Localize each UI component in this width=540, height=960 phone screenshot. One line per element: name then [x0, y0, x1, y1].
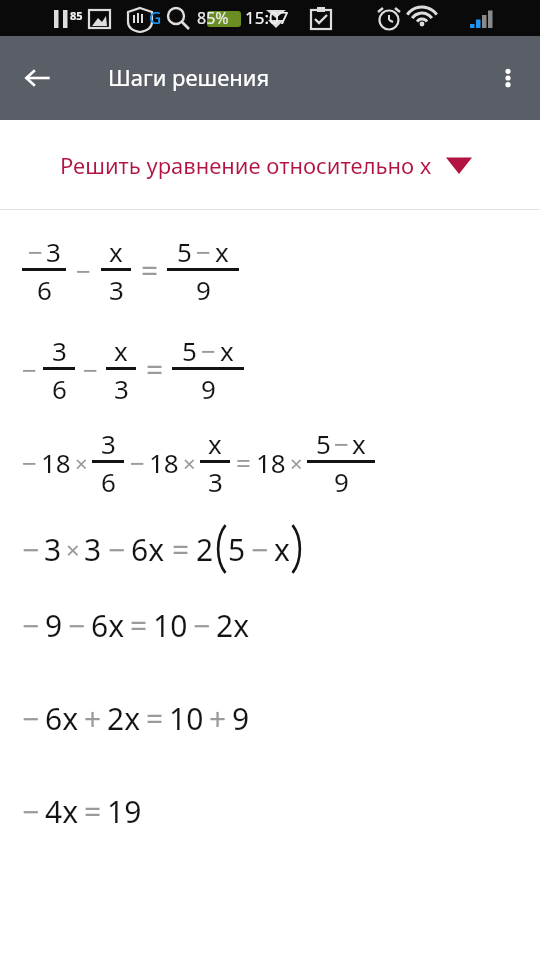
staticText: × — [183, 448, 196, 478]
staticText: = — [146, 349, 164, 390]
staticText: 19 — [107, 791, 142, 832]
staticText: 15:07 — [245, 6, 289, 29]
staticText: 3 — [46, 234, 61, 268]
staticText: 2x — [107, 698, 141, 739]
staticText: 3 — [114, 371, 129, 406]
staticText: × — [66, 533, 80, 566]
button[interactable]: Решить уравнение относительно x — [0, 120, 540, 209]
staticText: 9 — [45, 605, 63, 646]
staticText: + — [84, 698, 102, 739]
staticText: 5 — [182, 333, 197, 367]
staticText: − — [22, 698, 40, 739]
staticText: 2 — [196, 529, 214, 570]
staticText: 6 — [101, 464, 116, 499]
staticText: = — [141, 250, 159, 291]
staticText: = — [172, 529, 190, 570]
staticText: = — [84, 791, 102, 832]
staticText: 18 — [41, 445, 71, 480]
staticText: 3 — [101, 426, 116, 460]
staticText: 6x — [131, 529, 165, 570]
staticText: − — [68, 605, 86, 646]
staticText: 3 — [84, 529, 102, 570]
staticText: − — [108, 529, 126, 570]
staticText: = — [236, 445, 251, 480]
staticText: 6 — [37, 272, 52, 307]
button[interactable]: More options — [484, 54, 532, 102]
staticText: x — [220, 333, 234, 367]
staticText: 85% — [197, 7, 229, 29]
staticText: − — [22, 791, 40, 832]
staticText: = — [130, 605, 148, 646]
staticText: − — [22, 352, 37, 387]
staticText: − — [22, 445, 37, 480]
staticText: 10 — [153, 605, 188, 646]
staticText: + — [209, 698, 227, 739]
staticText: G — [149, 6, 162, 29]
staticText: − — [28, 234, 43, 268]
staticText: 18 — [149, 445, 179, 480]
staticText: − — [251, 529, 269, 570]
staticText: − — [201, 333, 216, 367]
staticText: − — [334, 426, 349, 460]
staticText: 18 — [256, 445, 286, 480]
staticText: 3 — [109, 272, 124, 307]
staticText: = — [146, 698, 164, 739]
staticText: 9 — [196, 272, 211, 307]
staticText: 9 — [334, 464, 349, 499]
staticText: 3 — [208, 464, 223, 499]
staticText: − — [22, 605, 40, 646]
staticText: × — [290, 448, 303, 478]
staticText: 5 — [177, 234, 192, 268]
staticText: 5 — [316, 426, 331, 460]
button[interactable]: Back — [14, 54, 62, 102]
staticText: 6x — [91, 605, 125, 646]
staticText: 9 — [232, 698, 250, 739]
staticText: 3 — [52, 333, 67, 367]
staticText: 3 — [44, 529, 62, 570]
staticText: 4x — [45, 791, 79, 832]
staticText: − — [130, 445, 145, 480]
staticText: x — [274, 529, 290, 570]
staticText: − — [196, 234, 211, 268]
staticText: × — [75, 448, 88, 478]
staticText: x — [208, 426, 222, 460]
staticText: − — [193, 605, 211, 646]
staticText: 9 — [201, 371, 216, 406]
staticText: x — [352, 426, 366, 460]
staticText: x — [109, 234, 123, 268]
staticText: − — [22, 529, 40, 570]
staticText: − — [83, 352, 98, 387]
staticText: Решить уравнение относительно x — [60, 150, 432, 180]
staticText: Шаги решения — [108, 62, 270, 92]
staticText: 85 — [70, 8, 83, 23]
staticText: 2x — [216, 605, 250, 646]
staticText: x — [114, 333, 128, 367]
staticText: x — [215, 234, 229, 268]
staticText: 6 — [52, 371, 67, 406]
staticText: 5 — [228, 529, 246, 570]
staticText: 6x — [45, 698, 79, 739]
staticText: − — [76, 253, 91, 288]
staticText: 10 — [169, 698, 204, 739]
